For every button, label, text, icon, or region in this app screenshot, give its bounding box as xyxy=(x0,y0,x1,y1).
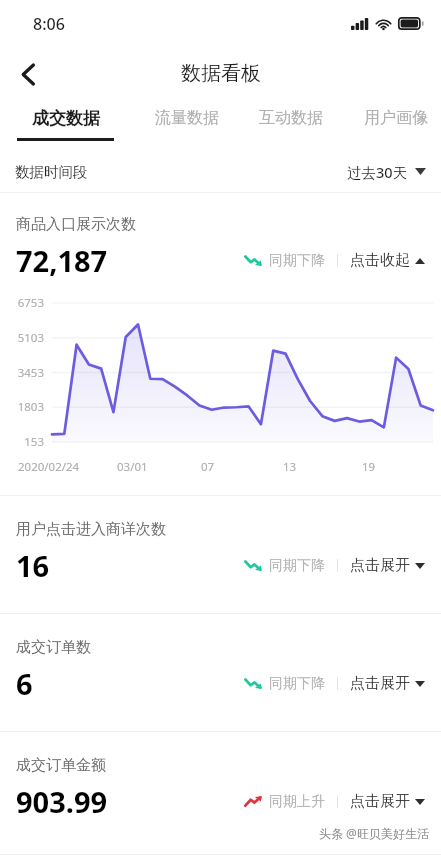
button[interactable]: 点击展开 xyxy=(350,556,425,575)
staticText: 153 xyxy=(2,434,44,450)
staticText: 数据看板 xyxy=(181,61,261,86)
staticText: 用户点击进入商详次数 xyxy=(16,520,166,539)
staticText: 72,187 xyxy=(16,241,108,280)
staticText: 点击展开 xyxy=(350,674,410,693)
staticText: 8:06 xyxy=(33,13,65,35)
button[interactable]: Back xyxy=(6,52,50,96)
staticText: 用户画像 xyxy=(364,108,428,128)
staticText: 13 xyxy=(283,459,297,475)
button[interactable]: 流量数据 xyxy=(152,100,222,137)
staticText: 互动数据 xyxy=(259,108,323,128)
staticText: 头条 @旺贝美好生活 xyxy=(319,825,429,841)
staticText: 5103 xyxy=(2,330,44,346)
staticText: 点击展开 xyxy=(350,556,410,575)
staticText: 903.99 xyxy=(16,782,108,821)
button[interactable]: 点击收起 xyxy=(350,251,425,270)
staticText: 07 xyxy=(201,459,215,475)
button[interactable]: 数据时间段 xyxy=(0,151,441,192)
staticText: 点击收起 xyxy=(350,251,410,270)
button[interactable]: 互动数据 xyxy=(256,100,326,137)
staticText: 6 xyxy=(16,664,33,703)
staticText: 成交订单金额 xyxy=(16,756,106,775)
staticText: 商品入口展示次数 xyxy=(16,215,136,234)
staticText: 同期上升 xyxy=(269,793,325,811)
staticText: 成交订单数 xyxy=(16,638,91,657)
staticText: 过去30天 xyxy=(347,162,408,182)
staticText: 03/01 xyxy=(117,459,148,475)
button[interactable]: 点击展开 xyxy=(350,792,425,811)
button[interactable]: 用户画像 xyxy=(361,100,431,137)
staticText: 16 xyxy=(16,546,50,585)
staticText: 1803 xyxy=(2,399,44,415)
staticText: 流量数据 xyxy=(155,108,219,128)
staticText: 同期下降 xyxy=(269,675,325,693)
staticText: 3453 xyxy=(2,365,44,381)
button[interactable]: 点击展开 xyxy=(350,674,425,693)
staticText: 成交数据 xyxy=(32,108,100,129)
staticText: 19 xyxy=(362,459,376,475)
staticText: 同期下降 xyxy=(269,557,325,575)
staticText: 2020/02/24 xyxy=(18,459,80,475)
staticText: 6753 xyxy=(2,295,44,311)
staticText: 数据时间段 xyxy=(15,163,88,181)
button[interactable]: 成交数据 xyxy=(14,100,117,141)
staticText: 同期下降 xyxy=(269,252,325,270)
staticText: 点击展开 xyxy=(350,792,410,811)
